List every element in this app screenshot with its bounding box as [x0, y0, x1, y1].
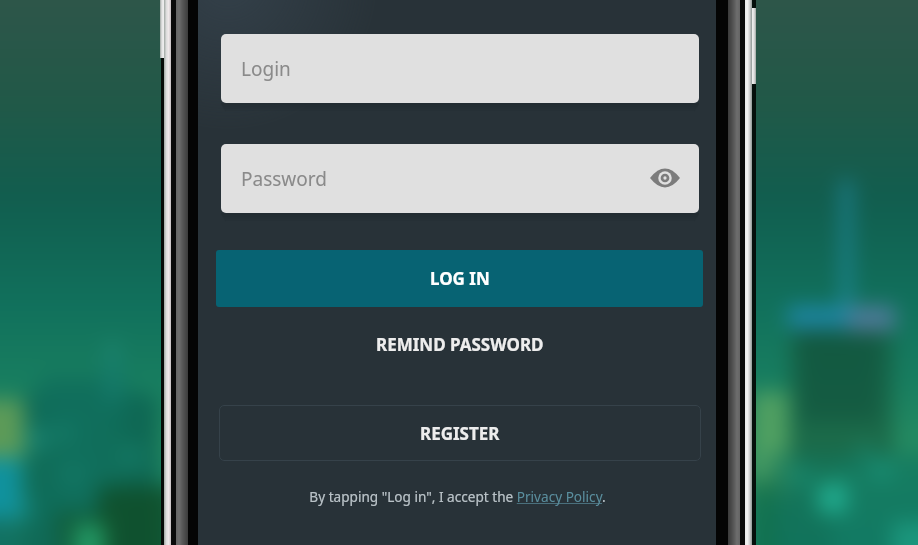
- button[interactable]: REGISTER: [219, 405, 701, 461]
- staticText: Login: [241, 56, 291, 82]
- button[interactable]: LOG IN: [216, 250, 703, 307]
- staticText: REGISTER: [420, 422, 500, 445]
- staticText: Password: [241, 166, 327, 192]
- staticText: LOG IN: [430, 267, 490, 290]
- button[interactable]: Show password: [642, 155, 688, 201]
- staticText: By tapping "Log in", I accept the Privac…: [309, 487, 606, 506]
- button[interactable]: REMIND PASSWORD: [216, 321, 703, 367]
- staticText: REMIND PASSWORD: [376, 333, 544, 356]
- button[interactable]: Login: [221, 34, 699, 103]
- button[interactable]: Password: [221, 144, 699, 213]
